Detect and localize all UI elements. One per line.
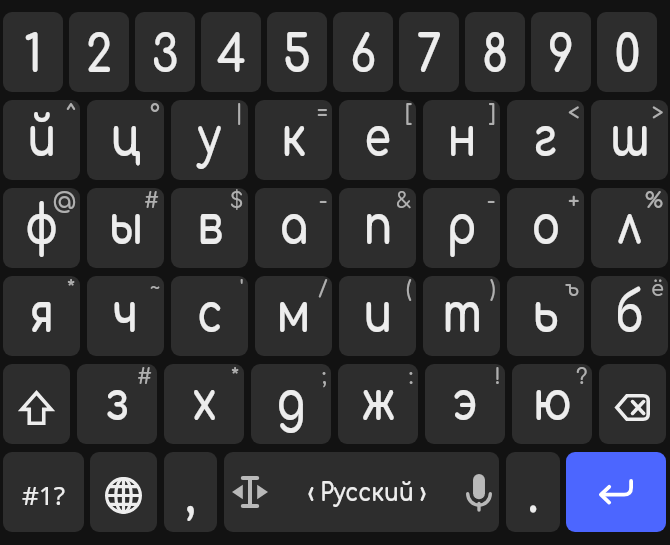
button[interactable]: Change language <box>90 452 157 532</box>
staticText: @ <box>53 189 76 212</box>
staticText: б <box>615 283 644 344</box>
button[interactable]: ы <box>87 188 164 268</box>
staticText: 6 <box>349 28 376 84</box>
button[interactable]: ю <box>512 364 592 444</box>
button[interactable]: з <box>77 364 157 444</box>
staticText: т <box>442 283 482 344</box>
button[interactable]: й <box>3 100 80 180</box>
staticText: 3 <box>151 28 178 84</box>
staticText: э <box>452 371 478 432</box>
staticText: - <box>487 189 496 212</box>
button[interactable]: , <box>164 452 217 532</box>
staticText: ы <box>108 195 144 256</box>
button[interactable]: х <box>164 364 244 444</box>
staticText: г <box>534 107 557 168</box>
button[interactable]: . <box>506 452 560 532</box>
button[interactable]: г <box>507 100 584 180</box>
button[interactable]: 7 <box>399 12 459 92</box>
staticText: ф <box>25 195 58 256</box>
staticText: ь <box>532 283 559 344</box>
button[interactable]: о <box>507 188 584 268</box>
button[interactable]: с <box>171 276 248 356</box>
staticText: ! <box>495 365 501 388</box>
staticText: $ <box>230 189 244 212</box>
button[interactable]: и <box>339 276 416 356</box>
button[interactable]: 0 <box>597 12 657 92</box>
button[interactable]: ж <box>338 364 418 444</box>
staticText: н <box>447 107 477 168</box>
staticText: ° <box>150 101 160 124</box>
button[interactable]: 3 <box>135 12 195 92</box>
staticText: к <box>281 107 306 168</box>
button[interactable]: 8 <box>465 12 525 92</box>
staticText: 2 <box>85 28 112 84</box>
button[interactable]: к <box>255 100 332 180</box>
button[interactable]: б <box>591 276 668 356</box>
staticText: 1 <box>24 28 42 84</box>
staticText: 5 <box>283 28 311 84</box>
staticText: : <box>409 365 414 388</box>
staticText: ш <box>610 107 650 168</box>
button[interactable]: т <box>423 276 500 356</box>
staticText: а <box>279 195 309 256</box>
button[interactable]: э <box>425 364 505 444</box>
button[interactable]: е <box>339 100 416 180</box>
staticText: ‹ Русский › <box>308 479 426 507</box>
staticText: ] <box>489 101 496 124</box>
button[interactable]: в <box>171 188 248 268</box>
staticText: > <box>652 101 664 124</box>
staticText: с <box>197 283 223 344</box>
button[interactable]: ц <box>87 100 164 180</box>
button[interactable]: ‹ Русский › <box>224 452 499 532</box>
staticText: & <box>396 189 412 212</box>
staticText: + <box>568 189 580 212</box>
staticText: , <box>185 468 196 524</box>
button[interactable]: я <box>3 276 80 356</box>
staticText: ч <box>113 283 138 344</box>
button[interactable]: Backspace <box>599 364 666 444</box>
staticText: у <box>197 107 222 168</box>
staticText: ё <box>651 277 664 300</box>
staticText: и <box>363 283 393 344</box>
button[interactable]: 6 <box>333 12 393 92</box>
staticText: ъ <box>565 277 580 300</box>
staticText: ) <box>490 277 496 300</box>
staticText: * <box>231 365 240 388</box>
button[interactable]: у <box>171 100 248 180</box>
staticText: 8 <box>481 28 508 84</box>
staticText: з <box>105 371 129 432</box>
button[interactable]: ф <box>3 188 80 268</box>
staticText: . <box>528 468 538 524</box>
staticText: #1? <box>22 477 65 512</box>
button[interactable]: 2 <box>69 12 129 92</box>
button[interactable]: #1? <box>3 452 84 532</box>
staticText: / <box>318 277 328 300</box>
button[interactable]: Enter <box>566 452 666 532</box>
button[interactable]: 5 <box>267 12 327 92</box>
button[interactable]: л <box>591 188 668 268</box>
staticText: я <box>29 283 54 344</box>
button[interactable]: 9 <box>531 12 591 92</box>
staticText: е <box>364 107 391 168</box>
staticText: л <box>617 195 642 256</box>
button[interactable]: н <box>423 100 500 180</box>
button[interactable]: м <box>255 276 332 356</box>
button[interactable]: р <box>423 188 500 268</box>
button[interactable]: Shift <box>3 364 70 444</box>
button[interactable]: ь <box>507 276 584 356</box>
staticText: р <box>446 195 477 256</box>
staticText: м <box>276 283 311 344</box>
staticText: в <box>197 195 223 256</box>
button[interactable]: ч <box>87 276 164 356</box>
button[interactable]: а <box>255 188 332 268</box>
staticText: 7 <box>416 28 442 84</box>
staticText: * <box>67 277 76 300</box>
button[interactable]: п <box>339 188 416 268</box>
button[interactable]: д <box>251 364 331 444</box>
button[interactable]: ш <box>591 100 668 180</box>
button[interactable]: 4 <box>201 12 261 92</box>
button[interactable]: 1 <box>3 12 63 92</box>
staticText: ~ <box>150 277 160 300</box>
staticText: п <box>363 195 393 256</box>
staticText: ? <box>576 365 588 388</box>
